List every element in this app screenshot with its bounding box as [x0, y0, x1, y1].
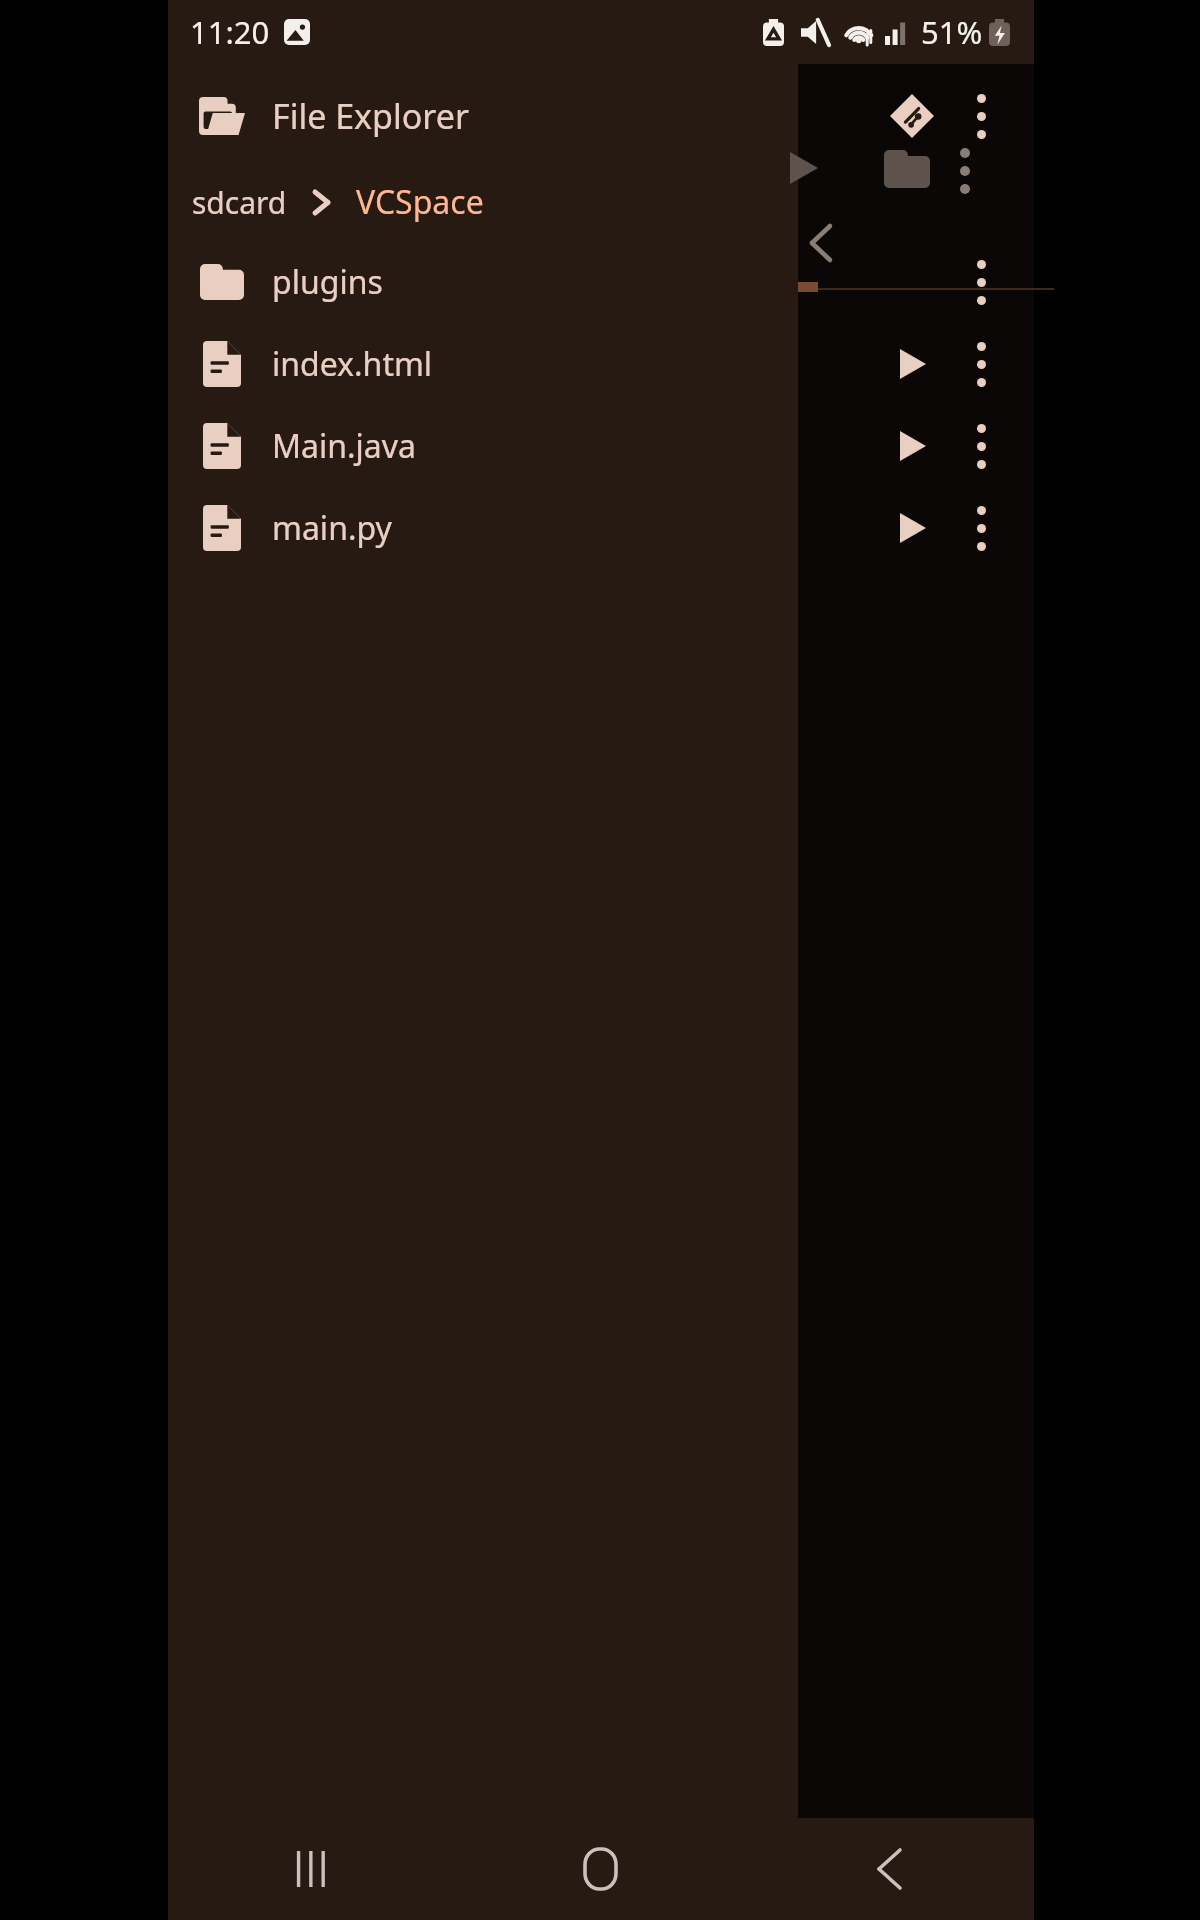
button[interactable]: index.html	[168, 323, 1034, 405]
button[interactable]: More options for index.html	[950, 333, 1012, 395]
staticText: 51%	[921, 11, 983, 53]
button[interactable]: Back	[745, 1818, 1034, 1920]
button[interactable]: Git	[876, 80, 948, 152]
button[interactable]: More options	[950, 85, 1012, 147]
button[interactable]: Main.java	[168, 405, 1034, 487]
button[interactable]: Open folder	[190, 84, 254, 148]
staticText: index.html	[272, 342, 433, 386]
button[interactable]: sdcard	[188, 174, 291, 231]
button[interactable]: Recent apps	[168, 1818, 456, 1920]
staticText: 11:20	[190, 11, 270, 53]
staticText: File Explorer	[272, 93, 469, 139]
staticText: VCSpace	[356, 180, 484, 224]
button[interactable]: More options for main.py	[950, 497, 1012, 559]
staticText: sdcard	[192, 182, 287, 223]
button[interactable]: VCSpace	[352, 172, 488, 232]
button[interactable]: Run index.html	[880, 331, 946, 397]
staticText: main.py	[272, 506, 392, 550]
staticText: plugins	[272, 260, 383, 304]
button[interactable]: More options for plugins	[950, 251, 1012, 313]
button[interactable]: Run Main.java	[880, 413, 946, 479]
staticText: Main.java	[272, 424, 417, 468]
button[interactable]: main.py	[168, 487, 1034, 569]
button[interactable]: Run main.py	[880, 495, 946, 561]
button[interactable]: Home	[456, 1818, 745, 1920]
button[interactable]: More options for Main.java	[950, 415, 1012, 477]
button[interactable]: plugins	[168, 241, 1034, 323]
